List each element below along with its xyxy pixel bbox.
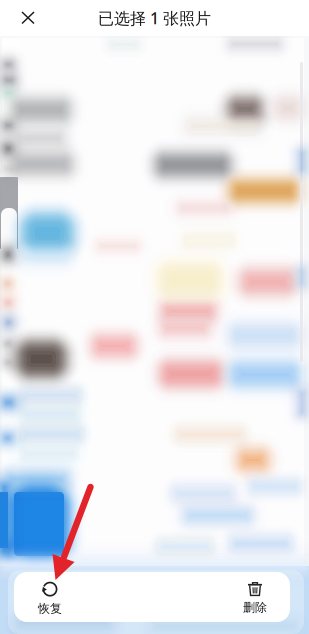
button[interactable]: 恢复 [22,577,78,619]
staticText: 已选择 1 张照片 [98,7,211,29]
staticText: 删除 [243,600,267,615]
staticText: 恢复 [38,601,62,616]
button[interactable]: Close [6,0,50,36]
button[interactable]: 删除 [227,577,283,619]
